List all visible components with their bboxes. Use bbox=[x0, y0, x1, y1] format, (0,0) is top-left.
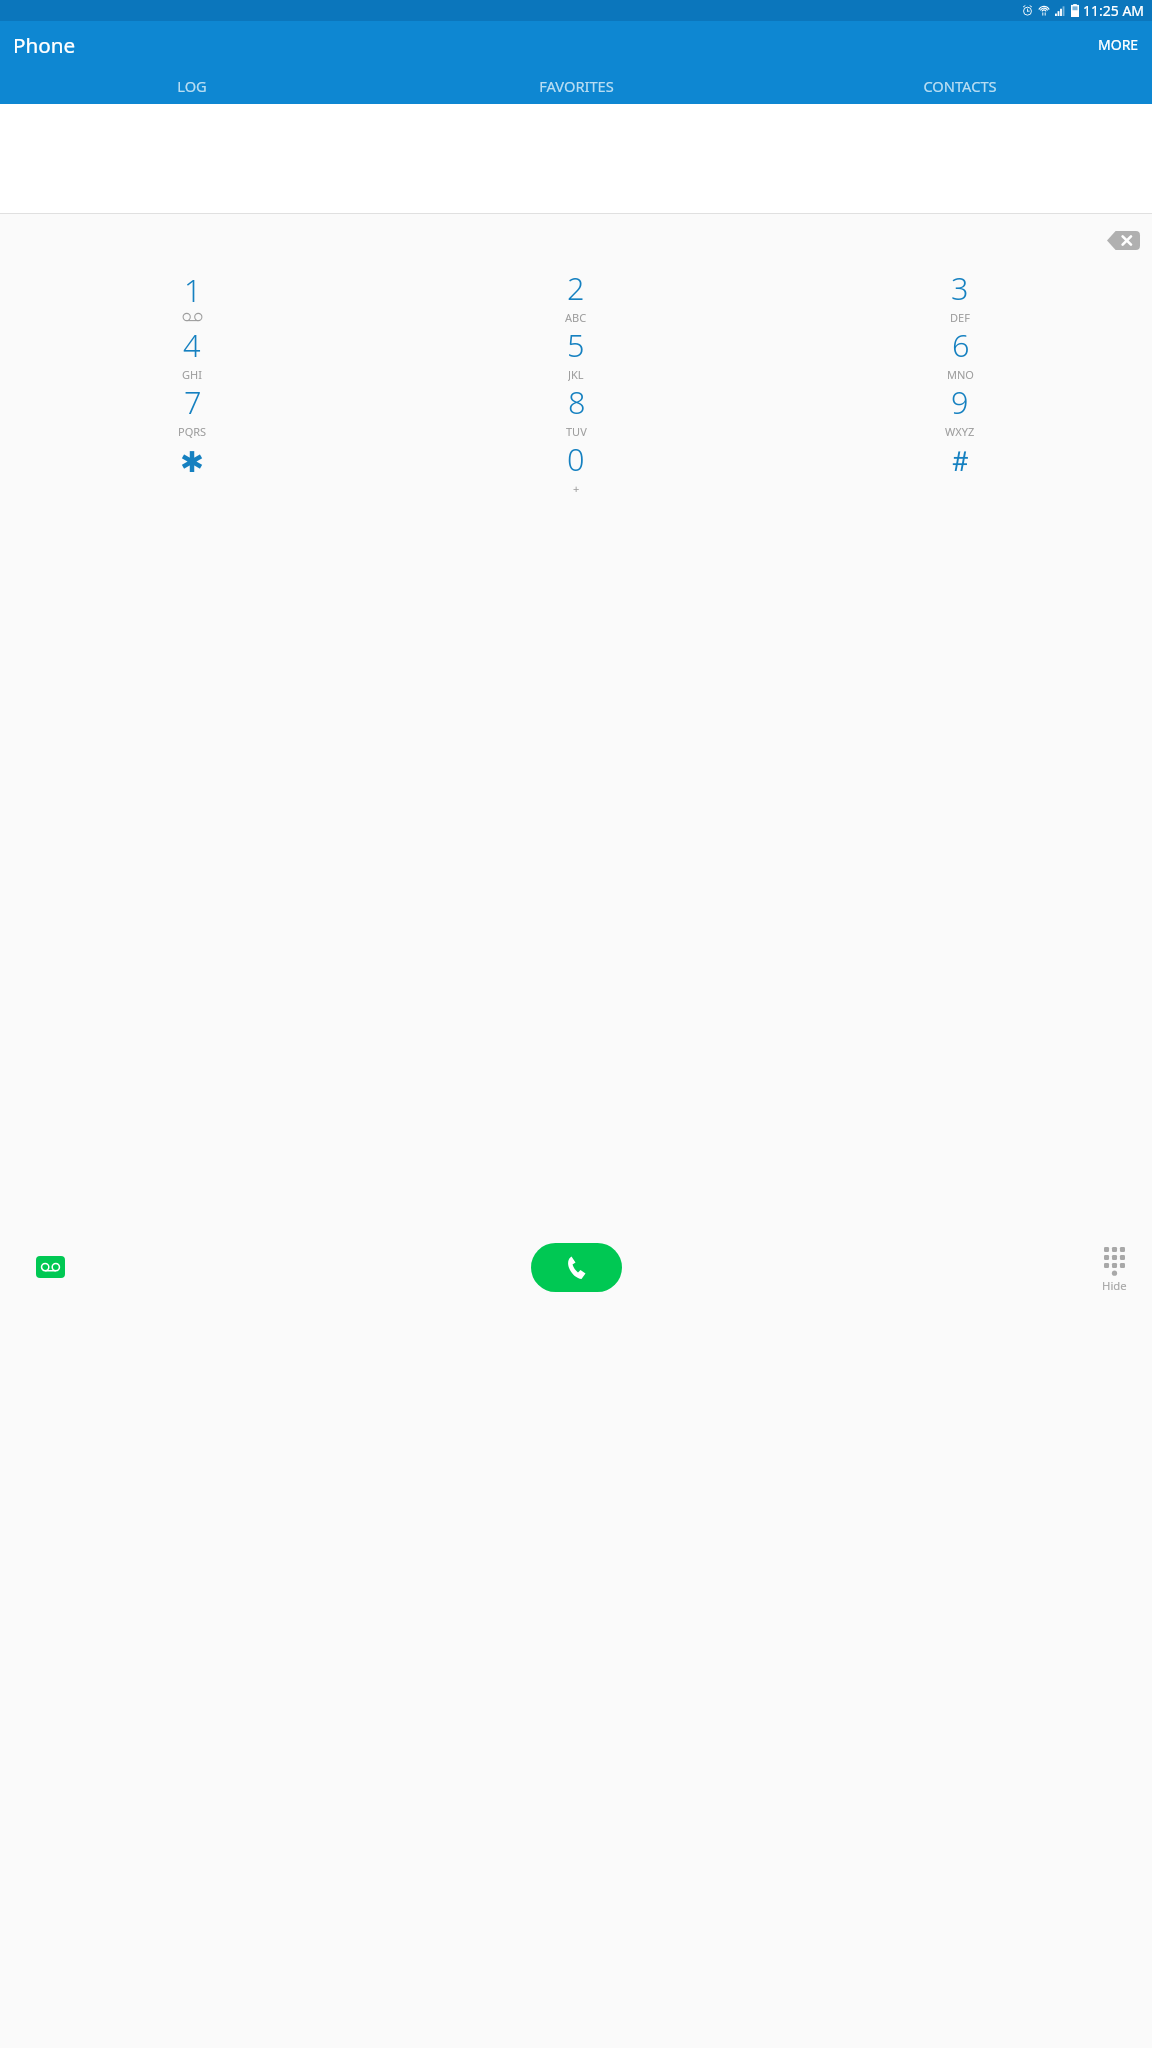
button[interactable]: 4 bbox=[0, 324, 384, 381]
staticText: 6 bbox=[952, 324, 970, 366]
staticText: LOG bbox=[177, 76, 207, 96]
staticText: JKL bbox=[568, 367, 584, 381]
staticText: FAVORITES bbox=[539, 76, 614, 96]
button[interactable]: Hide bbox=[1098, 1243, 1131, 1297]
button[interactable]: 7 bbox=[0, 381, 384, 438]
button[interactable]: Backspace bbox=[1102, 226, 1145, 255]
staticText: Phone bbox=[13, 31, 76, 59]
button[interactable]: 9 bbox=[768, 381, 1152, 438]
staticText: MNO bbox=[947, 367, 974, 381]
staticText: 1 bbox=[184, 269, 202, 311]
staticText: 2 bbox=[567, 267, 585, 309]
button[interactable]: 2 bbox=[384, 267, 768, 324]
staticText: 7 bbox=[184, 381, 202, 423]
staticText: GHI bbox=[182, 367, 202, 381]
staticText: PQRS bbox=[178, 424, 207, 438]
button[interactable]: Call bbox=[531, 1243, 622, 1292]
button[interactable]: 0 bbox=[384, 438, 768, 496]
button[interactable]: LOG bbox=[0, 68, 384, 104]
button[interactable]: 8 bbox=[384, 381, 768, 438]
staticText: DEF bbox=[950, 310, 970, 324]
staticText: ＃ bbox=[946, 443, 975, 479]
staticText: 0 bbox=[567, 438, 585, 480]
button[interactable]: MORE bbox=[1085, 27, 1152, 62]
staticText: MORE bbox=[1098, 35, 1139, 54]
button[interactable]: FAVORITES bbox=[384, 68, 768, 104]
staticText: Hide bbox=[1102, 1278, 1127, 1293]
button[interactable]: CONTACTS bbox=[768, 68, 1152, 104]
staticText: 5 bbox=[567, 324, 585, 366]
button[interactable]: 1 bbox=[0, 267, 384, 324]
button[interactable]: ✱ bbox=[0, 438, 384, 496]
button[interactable]: 6 bbox=[768, 324, 1152, 381]
staticText: 11:25 AM bbox=[1083, 1, 1145, 20]
button[interactable]: ＃ bbox=[768, 438, 1152, 496]
button[interactable]: 5 bbox=[384, 324, 768, 381]
staticText: ✱ bbox=[180, 445, 205, 478]
button[interactable]: Voicemail bbox=[33, 1253, 68, 1281]
button[interactable]: 3 bbox=[768, 267, 1152, 324]
staticText: 3 bbox=[951, 267, 969, 309]
staticText: CONTACTS bbox=[923, 76, 997, 96]
staticText: WXYZ bbox=[945, 424, 975, 438]
staticText: ABC bbox=[565, 310, 587, 324]
staticText: 9 bbox=[951, 381, 969, 423]
staticText: 4 bbox=[183, 324, 201, 366]
staticText: TUV bbox=[566, 424, 587, 438]
staticText: 8 bbox=[568, 381, 586, 423]
staticText: + bbox=[573, 481, 580, 496]
